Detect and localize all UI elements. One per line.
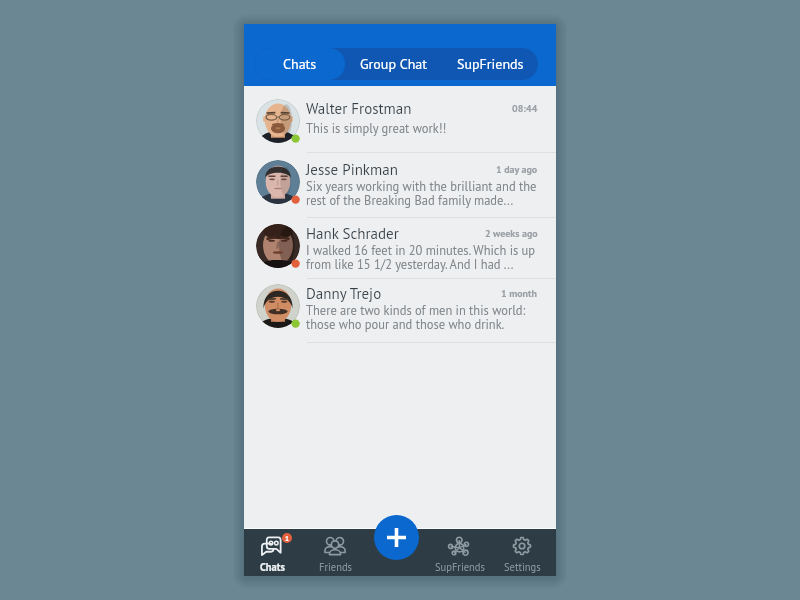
staticText: There are two kinds of men in this world…: [306, 302, 526, 332]
staticText: 1 month: [501, 287, 538, 300]
staticText: Group Chat: [360, 55, 428, 73]
staticText: Chats: [283, 55, 317, 73]
button[interactable]: Walter Frostman: [244, 86, 556, 153]
button[interactable]: SupFriends: [428, 529, 492, 576]
staticText: 2 weeks ago: [485, 227, 538, 240]
staticText: This is simply great work!!: [306, 120, 447, 136]
staticText: 1 day ago: [496, 163, 538, 176]
button[interactable]: Friends: [303, 529, 367, 576]
staticText: I walked 16 feet in 20 minutes. Which is…: [306, 242, 536, 272]
staticText: Danny Trejo: [306, 284, 501, 303]
staticText: 08:44: [512, 102, 538, 115]
staticText: Six years working with the brilliant and…: [306, 178, 537, 208]
staticText: Walter Frostman: [306, 99, 512, 118]
button[interactable]: New chat: [374, 515, 419, 560]
staticText: SupFriends: [435, 560, 485, 574]
staticText: Jesse Pinkman: [306, 160, 496, 179]
staticText: 1: [285, 534, 289, 543]
button[interactable]: Danny Trejo: [244, 279, 556, 343]
staticText: Friends: [319, 560, 352, 574]
staticText: Chats: [260, 560, 285, 574]
button[interactable]: 1: [240, 529, 304, 576]
button[interactable]: Chats: [255, 48, 345, 80]
staticText: SupFriends: [457, 55, 524, 73]
button[interactable]: Settings: [490, 529, 554, 576]
staticText: Hank Schrader: [306, 224, 485, 243]
button[interactable]: SupFriends: [443, 48, 538, 80]
staticText: Settings: [504, 560, 541, 574]
button[interactable]: Hank Schrader: [244, 218, 556, 279]
button[interactable]: Jesse Pinkman: [244, 153, 556, 218]
button[interactable]: Group Chat: [345, 48, 443, 80]
